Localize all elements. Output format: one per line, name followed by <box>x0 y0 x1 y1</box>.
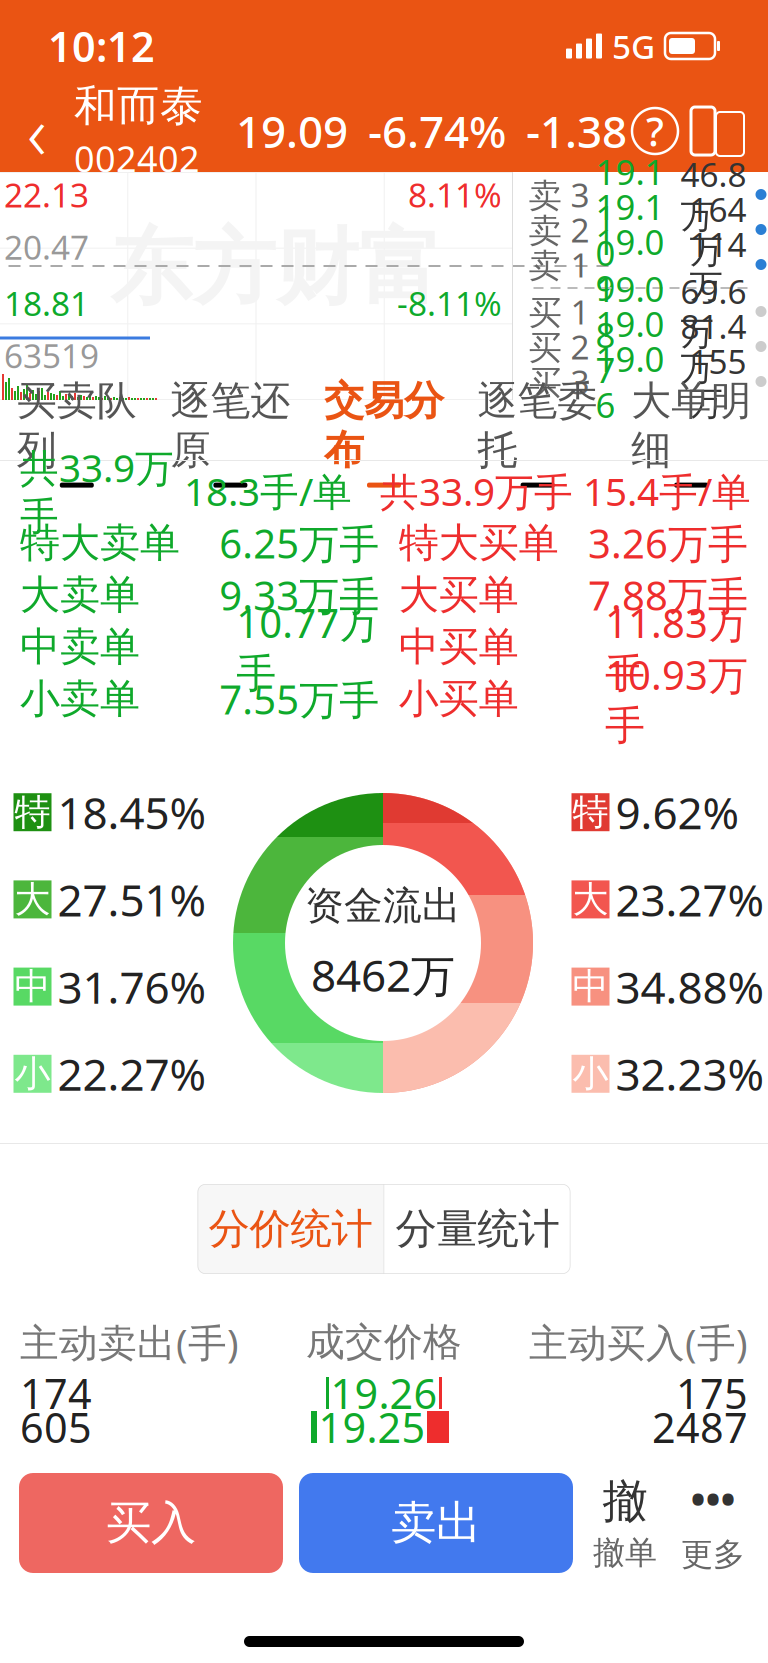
staticText: 114万 <box>689 222 746 307</box>
staticText: -8.11% <box>397 281 502 325</box>
staticText: 22.27% <box>57 1045 206 1103</box>
button[interactable]: 卖出 <box>299 1473 573 1573</box>
staticText: 共33.9万手 <box>380 465 573 517</box>
staticText: 6.25万手 <box>219 516 379 569</box>
staticText: 10.93万手 <box>605 648 748 750</box>
staticText: 10.77万手 <box>236 596 379 698</box>
staticText: 大卖单 <box>20 570 140 619</box>
staticText: 主动卖出(手) <box>20 1316 239 1368</box>
button[interactable]: 撤 <box>589 1473 661 1573</box>
staticText: 中 <box>572 964 608 1009</box>
staticText: ‹ <box>27 81 47 181</box>
staticText: 特 <box>14 790 50 834</box>
button[interactable]: Back <box>0 92 74 170</box>
button[interactable]: Layout <box>678 101 754 161</box>
staticText: 155万 <box>689 339 746 424</box>
staticText: 18.45% <box>57 783 206 841</box>
staticText: 002402 <box>74 134 200 182</box>
staticText: 19.08 <box>595 265 664 358</box>
staticText: ? <box>646 104 664 157</box>
staticText: 22.13 <box>4 172 89 217</box>
staticText: 买入 <box>106 1495 196 1551</box>
staticText: 逐笔委托 <box>478 376 598 475</box>
staticText: 撤 <box>602 1473 647 1529</box>
staticText: 11.83万手 <box>605 596 748 698</box>
staticText: 27.51% <box>57 870 206 929</box>
staticText: 买 2 <box>528 324 589 369</box>
staticText: 小 <box>572 1052 608 1096</box>
staticText: 19.09 <box>236 102 348 160</box>
button[interactable]: 买入 <box>19 1473 283 1573</box>
staticText: 卖 1 <box>528 242 589 287</box>
staticText: 31.76% <box>57 957 206 1016</box>
staticText: -6.74% <box>368 102 506 160</box>
staticText: 共33.9万手 <box>20 442 174 540</box>
staticText: 特 <box>572 790 608 834</box>
staticText: 卖出 <box>391 1495 481 1551</box>
button[interactable]: 买卖队列 <box>0 400 154 460</box>
staticText: 34.88% <box>615 957 764 1016</box>
staticText: 19.06 <box>595 335 664 428</box>
staticText: 32.23% <box>615 1045 764 1103</box>
staticText: 174 <box>20 1366 92 1420</box>
staticText: 大 <box>572 877 608 921</box>
staticText: 9.33万手 <box>219 568 379 621</box>
staticText: 2487 <box>652 1400 748 1454</box>
staticText: 大 <box>14 877 50 921</box>
button[interactable]: 逐笔委托 <box>461 400 614 460</box>
staticText: 小 <box>14 1052 50 1096</box>
staticText: 46.8万 <box>680 152 746 237</box>
staticText: 特大卖单 <box>20 518 180 567</box>
staticText: 特大买单 <box>399 518 559 567</box>
button[interactable]: Help <box>632 108 678 154</box>
staticText: 8.11% <box>408 172 502 217</box>
staticText: 9.62% <box>615 783 739 841</box>
button[interactable]: 大单明细 <box>614 400 768 460</box>
button[interactable]: ••• <box>677 1473 749 1573</box>
staticText: 卖 3 <box>528 172 589 217</box>
staticText: 买 1 <box>528 289 589 334</box>
staticText: 19.25 <box>318 1400 425 1454</box>
staticText: 23.27% <box>615 870 764 929</box>
staticText: 7.55万手 <box>219 672 379 725</box>
staticText: 7.88万手 <box>588 568 748 621</box>
staticText: 164万 <box>689 187 746 272</box>
staticText: 小买单 <box>399 674 519 723</box>
staticText: 撤单 <box>593 1533 657 1572</box>
staticText: 19.11 <box>595 148 664 241</box>
staticText: 18.3手/单 <box>184 465 352 517</box>
staticText: 大买单 <box>399 570 519 619</box>
staticText: 东方财富 <box>110 217 442 319</box>
staticText: 63519 <box>4 333 99 378</box>
button[interactable]: 分价统计 <box>197 1184 383 1274</box>
staticText: 中 <box>14 964 50 1009</box>
staticText: 20.47 <box>4 225 89 269</box>
staticText: 主动买入(手) <box>529 1316 748 1368</box>
staticText: 19.10 <box>595 183 664 276</box>
staticText: 小卖单 <box>20 674 140 723</box>
staticText: 10:12 <box>48 19 155 73</box>
staticText: 卖 2 <box>528 207 589 252</box>
staticText: 大单明细 <box>631 376 751 475</box>
staticText: 更多 <box>681 1535 745 1574</box>
staticText: 15.4手/单 <box>583 465 751 517</box>
staticText: 19.07 <box>595 300 664 393</box>
staticText: 中卖单 <box>20 622 140 671</box>
staticText: 逐笔还原 <box>170 376 290 475</box>
staticText: 8462万 <box>311 945 455 1004</box>
staticText: 成交价格 <box>306 1318 462 1366</box>
staticText: 175 <box>676 1366 748 1420</box>
staticText: 19.09 <box>595 218 664 311</box>
staticText: 19.26 <box>330 1366 437 1420</box>
staticText: 分价统计 <box>208 1204 372 1254</box>
staticText: 3.26万手 <box>588 516 748 569</box>
staticText: 605 <box>20 1400 92 1454</box>
staticText: 和而泰 <box>74 80 203 132</box>
staticText: 分量统计 <box>395 1204 559 1254</box>
button[interactable]: 分量统计 <box>384 1184 570 1274</box>
staticText: 资金流出 <box>305 882 461 929</box>
staticText: 18.81 <box>4 281 89 325</box>
button[interactable]: 逐笔还原 <box>154 400 307 460</box>
staticText: 买卖队列 <box>17 376 137 475</box>
button[interactable]: 交易分布 <box>307 400 461 460</box>
